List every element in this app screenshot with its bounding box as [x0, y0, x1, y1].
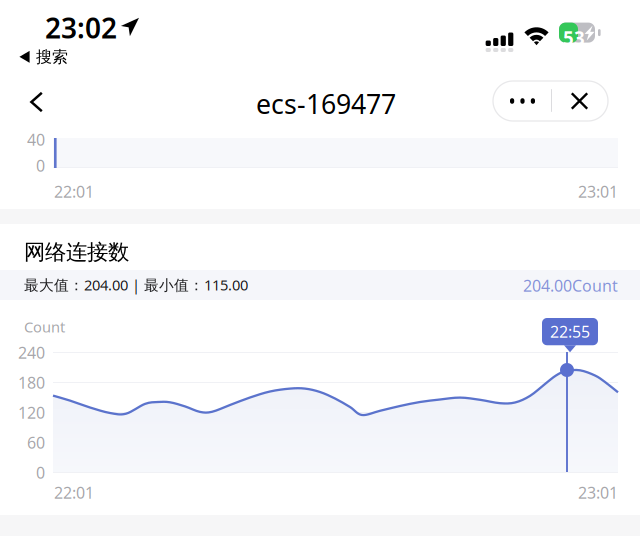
- staticText: 240: [18, 342, 45, 363]
- staticText: 23:01: [578, 482, 618, 503]
- staticText: 最大值：204.00 | 最小值：115.00: [24, 275, 248, 294]
- staticText: 搜索: [36, 47, 68, 67]
- staticText: 0: [36, 462, 45, 483]
- button[interactable]: Close: [551, 81, 608, 121]
- staticText: 60: [27, 432, 45, 453]
- staticText: 40: [27, 129, 45, 150]
- staticText: 23:01: [578, 181, 618, 202]
- staticText: Count: [24, 317, 65, 336]
- staticText: 204.00Count: [523, 275, 618, 296]
- staticText: 180: [18, 372, 45, 393]
- button[interactable]: Back: [9, 74, 64, 130]
- staticText: 22:01: [54, 482, 94, 503]
- staticText: 0: [36, 155, 45, 176]
- staticText: 53: [563, 26, 585, 50]
- staticText: 120: [18, 402, 45, 423]
- staticText: 23:02: [45, 9, 117, 46]
- staticText: 22:01: [54, 181, 94, 202]
- staticText: 22:55: [550, 321, 590, 342]
- staticText: 网络连接数: [24, 239, 129, 265]
- staticText: ecs-169477: [256, 86, 396, 121]
- button[interactable]: More options: [494, 81, 551, 121]
